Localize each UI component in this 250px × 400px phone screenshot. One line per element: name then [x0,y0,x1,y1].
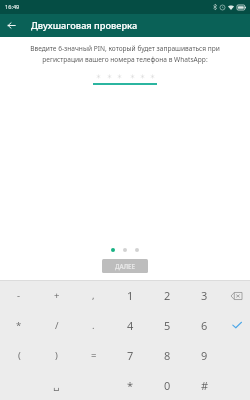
staticText: 1 [127,288,134,303]
button[interactable]: 4 [112,310,149,340]
button[interactable]: 7 [112,340,149,370]
button[interactable]: Done [223,310,250,340]
button[interactable]: ␣ [38,370,75,400]
button[interactable]: 0 [149,370,186,400]
staticText: 4 [127,318,134,333]
button[interactable]: 2 [149,281,186,310]
staticText: ( [18,349,21,362]
button[interactable]: * [112,370,149,400]
staticText: # [201,378,209,393]
button[interactable]: - [0,281,38,310]
staticText: 16:49 [5,3,20,11]
button[interactable]: 1 [112,281,149,310]
staticText: 5 [164,318,171,333]
staticText: - [17,289,21,302]
other: Done [232,321,242,329]
other: Backspace [231,292,242,300]
staticText: 9 [201,348,208,363]
button[interactable]: , [75,281,112,310]
staticText: ДАЛЕЕ [115,262,135,270]
button[interactable]: # [186,370,223,400]
staticText: ␣ [53,380,60,391]
button[interactable]: ДАЛЕЕ [102,259,148,273]
button[interactable]: ( [0,340,38,370]
button[interactable]: 3 [186,281,223,310]
button[interactable]: ) [38,340,75,370]
button[interactable] [93,71,157,85]
staticText: Двухшаговая проверка [31,19,138,32]
staticText: 0 [164,378,171,393]
staticText: , [92,289,95,302]
button[interactable]: 5 [149,310,186,340]
staticText: * [16,319,22,332]
staticText: + [54,289,60,302]
button[interactable]: 6 [186,310,223,340]
button[interactable]: Back [0,14,23,37]
staticText: 2 [164,288,171,303]
staticText: = [91,349,97,362]
staticText: * [127,378,134,393]
button[interactable]: / [38,310,75,340]
staticText: 6 [201,318,208,333]
staticText: 3 [201,288,208,303]
staticText: . [92,319,95,332]
button[interactable]: * [0,310,38,340]
staticText: 7 [127,348,134,363]
button[interactable]: 9 [186,340,223,370]
staticText: ) [55,349,58,362]
staticText: / [55,319,59,332]
button[interactable]: = [75,340,112,370]
button[interactable]: Backspace [223,281,250,310]
button[interactable]: + [38,281,75,310]
staticText: Введите 6-значный PIN, который будет зап… [10,44,240,64]
button[interactable]: 8 [149,340,186,370]
staticText: 8 [164,348,171,363]
